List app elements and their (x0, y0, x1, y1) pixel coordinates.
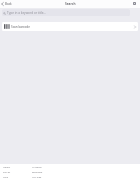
staticText: Sort by (3, 171, 11, 174)
staticText: All Media (32, 166, 42, 169)
staticText: Search (65, 2, 76, 6)
button[interactable]: Type (0, 175, 140, 180)
button[interactable]: Camera search (133, 2, 136, 5)
button[interactable]: Back (0, 0, 14, 8)
staticText: Library (3, 166, 11, 169)
button[interactable]: Sort by (0, 170, 140, 175)
staticText: Any Type (32, 176, 42, 179)
button[interactable]: Library (0, 165, 140, 170)
staticText: Relevance (32, 171, 43, 174)
button[interactable]: Type in a keyword or title... (2, 9, 130, 16)
staticText: Back (5, 2, 12, 6)
button[interactable]: Scan barcode (2, 22, 138, 31)
staticText: Scan barcode (11, 25, 30, 29)
staticText: Type in a keyword or title... (7, 11, 46, 15)
staticText: Type (3, 176, 8, 179)
